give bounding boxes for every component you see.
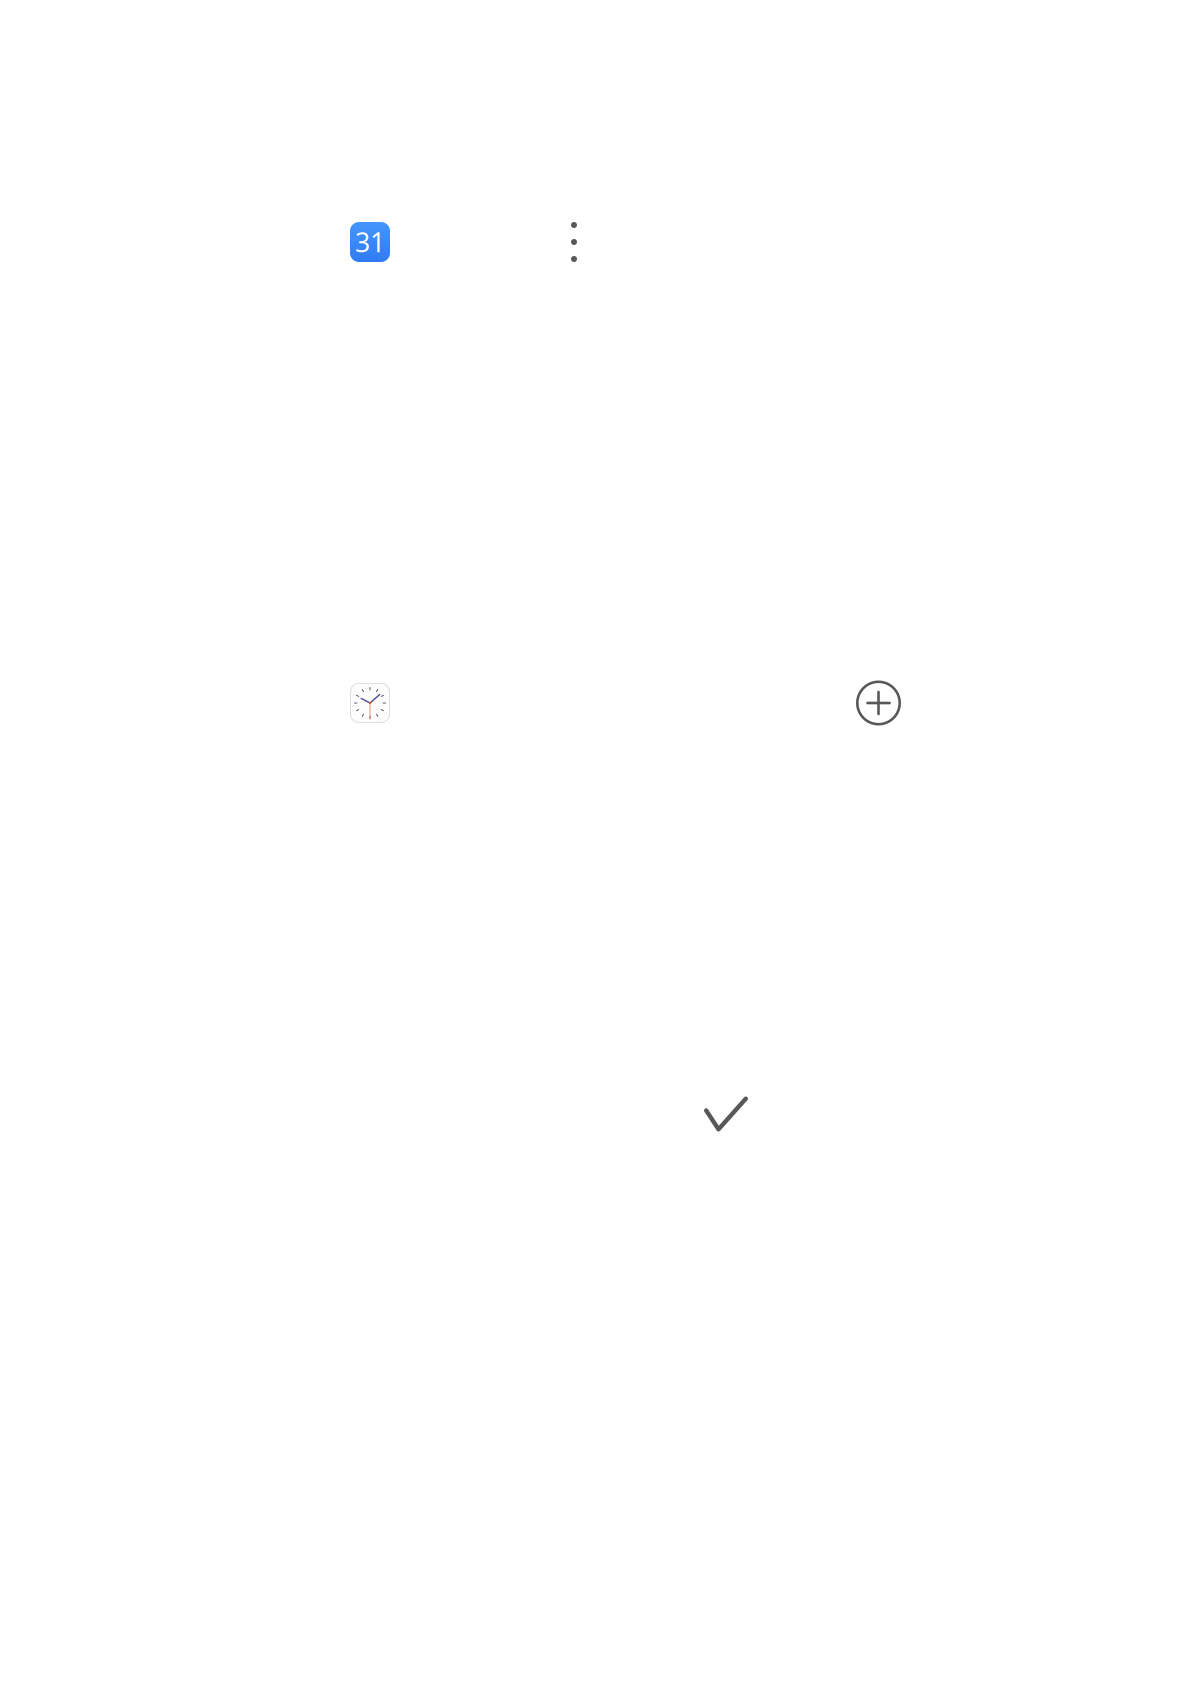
button[interactable]: Done bbox=[704, 1096, 748, 1131]
button[interactable]: Clock bbox=[350, 683, 390, 723]
staticText: 31 bbox=[355, 224, 385, 260]
button[interactable]: Calendar bbox=[350, 222, 390, 262]
button[interactable]: More options bbox=[559, 220, 589, 264]
button[interactable]: Add action bbox=[856, 680, 901, 725]
